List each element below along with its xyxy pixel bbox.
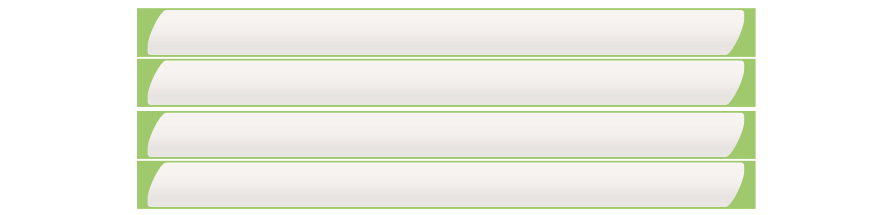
button[interactable]: List item 4 bbox=[137, 161, 756, 209]
button[interactable]: List item 2 bbox=[137, 59, 756, 107]
button[interactable]: List item 3 bbox=[137, 111, 756, 159]
button[interactable]: List item 1 bbox=[137, 8, 756, 57]
